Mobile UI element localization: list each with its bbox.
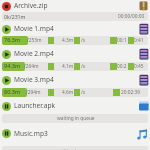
staticText: /264m — [24, 63, 39, 70]
staticText: 00:00/00:00 — [118, 13, 145, 20]
staticText: waiting in queue — [57, 115, 95, 122]
button[interactable] — [0, 22, 150, 47]
staticText: 94.3m — [4, 62, 21, 69]
staticText: Movie 3.mp4 — [14, 75, 54, 84]
staticText: 4.6m — [62, 89, 74, 96]
staticText: Movie 2.mp4 — [14, 49, 54, 58]
button[interactable] — [2, 2, 11, 11]
button[interactable] — [138, 74, 150, 86]
button[interactable] — [2, 76, 11, 85]
staticText: Music.mp3 — [14, 129, 48, 138]
staticText: 4.3m — [62, 37, 74, 44]
button[interactable] — [2, 129, 11, 138]
button[interactable] — [2, 62, 148, 71]
button[interactable] — [2, 36, 148, 45]
button[interactable] — [0, 126, 150, 150]
staticText: 4.1m — [62, 63, 74, 70]
staticText: 0k/231m — [4, 13, 26, 20]
staticText: Launcher.apk — [14, 101, 55, 110]
button[interactable] — [0, 0, 150, 22]
button[interactable] — [2, 88, 148, 97]
staticText: 00:2 — [117, 63, 127, 70]
button[interactable] — [2, 12, 148, 21]
button[interactable] — [2, 114, 148, 123]
staticText: waiting in queue — [57, 148, 95, 150]
staticText: /253m — [27, 37, 42, 44]
button[interactable] — [138, 0, 150, 12]
staticText: /s — [81, 63, 86, 70]
staticText: /s — [81, 89, 86, 96]
staticText: Movie 1.mp4 — [14, 24, 54, 33]
staticText: /s — [81, 37, 86, 44]
staticText: /294m — [26, 89, 41, 96]
button[interactable] — [138, 100, 150, 112]
button[interactable] — [0, 74, 150, 100]
button[interactable] — [138, 48, 150, 60]
button[interactable] — [0, 100, 150, 126]
button[interactable] — [2, 50, 11, 59]
button[interactable] — [0, 48, 150, 74]
staticText: 00:1 — [117, 37, 127, 44]
button[interactable] — [2, 25, 11, 34]
staticText: 76.3m — [4, 36, 21, 43]
button[interactable] — [136, 128, 148, 140]
staticText: 80.3m — [4, 88, 21, 95]
staticText: 0:41 — [134, 37, 144, 44]
staticText: Archive.zip — [14, 1, 48, 10]
button[interactable] — [2, 102, 11, 111]
staticText: 20:02:39 — [121, 89, 141, 96]
button[interactable] — [138, 23, 150, 35]
staticText: 0:45 — [134, 63, 144, 70]
